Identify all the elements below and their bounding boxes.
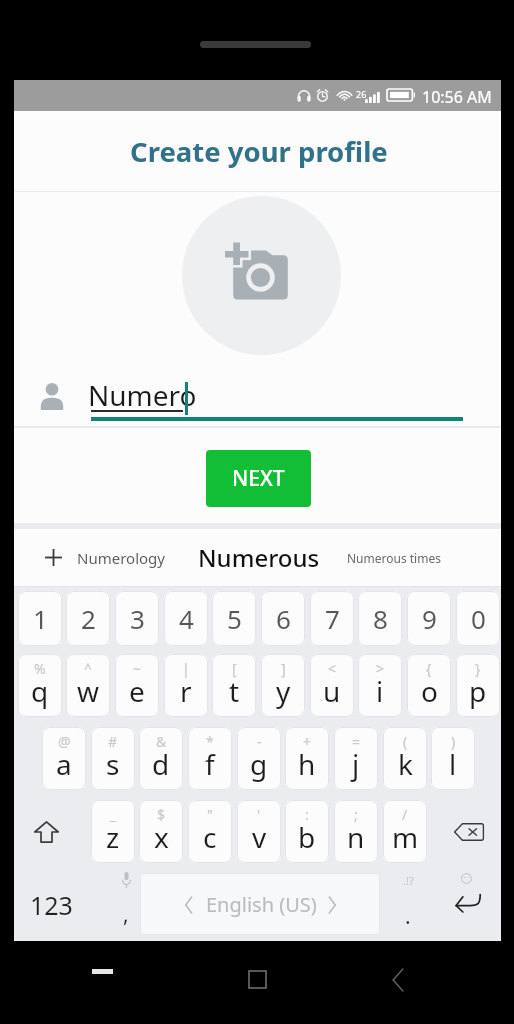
staticText: a: [56, 745, 72, 783]
staticText: @: [58, 732, 71, 751]
staticText: ': [257, 805, 261, 824]
staticText: <: [328, 659, 337, 678]
button[interactable]: Backspace: [434, 800, 504, 863]
button[interactable]: [: [212, 654, 256, 717]
staticText: 9: [422, 601, 437, 636]
button[interactable]: 3: [115, 591, 159, 646]
button[interactable]: 1: [18, 591, 62, 646]
button[interactable]: Home: [249, 971, 266, 988]
button[interactable]: (: [383, 727, 427, 790]
button[interactable]: %: [18, 654, 62, 717]
staticText: u: [323, 672, 341, 710]
staticText: Create your profile: [130, 133, 388, 170]
staticText: m: [392, 818, 419, 856]
button[interactable]: 123: [14, 867, 88, 935]
staticText: 6: [276, 601, 291, 636]
button[interactable]: Numerous: [179, 529, 339, 586]
staticText: s: [106, 745, 120, 783]
button[interactable]: /: [383, 800, 427, 863]
button[interactable]: English (US): [140, 873, 380, 935]
button[interactable]: Numerous times: [335, 529, 452, 586]
staticText: p: [469, 672, 487, 710]
staticText: h: [298, 745, 316, 783]
button[interactable]: Enter: [438, 867, 494, 935]
button[interactable]: +: [285, 727, 329, 790]
staticText: [: [232, 659, 237, 678]
button[interactable]: *: [188, 727, 232, 790]
button[interactable]: @: [42, 727, 86, 790]
staticText: Numero: [88, 376, 197, 414]
staticText: +: [303, 732, 312, 751]
staticText: >: [376, 659, 385, 678]
staticText: -: [257, 732, 262, 751]
staticText: Numerous: [198, 541, 320, 574]
staticText: 26: [356, 88, 367, 100]
staticText: x: [154, 818, 169, 856]
button[interactable]: =: [334, 727, 378, 790]
staticText: ): [451, 732, 456, 751]
button[interactable]: Period: [384, 867, 432, 935]
staticText: 123: [30, 888, 73, 922]
button[interactable]: :: [285, 800, 329, 863]
staticText: l: [449, 745, 457, 783]
staticText: b: [298, 818, 316, 856]
button[interactable]: ': [237, 800, 281, 863]
button[interactable]: 6: [261, 591, 305, 646]
button[interactable]: #: [91, 727, 135, 790]
staticText: 5: [227, 601, 242, 636]
button[interactable]: }: [456, 654, 500, 717]
button[interactable]: ^: [66, 654, 110, 717]
button[interactable]: ]: [261, 654, 305, 717]
button[interactable]: ): [431, 727, 475, 790]
staticText: k: [398, 745, 413, 783]
staticText: e: [129, 672, 145, 710]
staticText: y: [276, 672, 291, 710]
staticText: 7: [325, 601, 340, 636]
button[interactable]: 2: [66, 591, 110, 646]
staticText: j: [352, 745, 360, 783]
button[interactable]: ;: [334, 800, 378, 863]
button[interactable]: |: [164, 654, 208, 717]
button[interactable]: ": [188, 800, 232, 863]
staticText: q: [31, 672, 49, 710]
staticText: ~: [133, 659, 142, 678]
button[interactable]: Shift: [11, 800, 81, 863]
staticText: |: [182, 659, 190, 678]
staticText: Numerous times: [347, 550, 441, 566]
staticText: {: [426, 659, 432, 678]
staticText: t: [229, 672, 240, 710]
button[interactable]: -: [237, 727, 281, 790]
staticText: 8: [373, 601, 388, 636]
button[interactable]: 4: [164, 591, 208, 646]
button[interactable]: Add profile photo: [182, 196, 341, 355]
button[interactable]: Numerology: [76, 529, 166, 586]
button[interactable]: >: [358, 654, 402, 717]
button[interactable]: Back: [392, 969, 404, 991]
staticText: =: [352, 732, 361, 751]
button[interactable]: &: [139, 727, 183, 790]
staticText: o: [421, 672, 438, 710]
button[interactable]: _: [91, 800, 135, 863]
button[interactable]: NEXT: [206, 450, 311, 507]
staticText: /: [402, 805, 408, 824]
staticText: English (US): [206, 891, 317, 918]
button[interactable]: 0: [456, 591, 500, 646]
staticText: 3: [130, 601, 145, 636]
staticText: .!?: [403, 873, 414, 888]
button[interactable]: $: [139, 800, 183, 863]
staticText: 1: [33, 601, 48, 636]
button[interactable]: 9: [407, 591, 451, 646]
staticText: $: [157, 805, 166, 824]
button[interactable]: ~: [115, 654, 159, 717]
staticText: 2: [81, 601, 96, 636]
button[interactable]: 7: [310, 591, 354, 646]
button[interactable]: Add to dictionary: [22, 529, 84, 586]
button[interactable]: <: [310, 654, 354, 717]
button[interactable]: 8: [358, 591, 402, 646]
staticText: f: [205, 745, 215, 783]
button[interactable]: 5: [212, 591, 256, 646]
button[interactable]: {: [407, 654, 451, 717]
button[interactable]: Comma and voice input: [102, 867, 150, 935]
staticText: v: [252, 818, 267, 856]
